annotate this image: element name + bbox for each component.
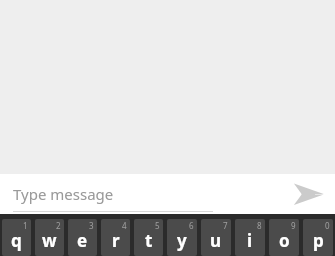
staticText: e	[77, 229, 88, 252]
staticText: w	[42, 229, 57, 252]
button[interactable]: 5	[134, 219, 163, 256]
staticText: i	[247, 229, 253, 252]
staticText: 2	[56, 220, 61, 231]
staticText: Type message	[13, 184, 114, 204]
button[interactable]: 9	[269, 219, 299, 256]
button[interactable]: 3	[68, 219, 97, 256]
staticText: 9	[291, 220, 296, 231]
staticText: 4	[122, 220, 127, 231]
button[interactable]: 2	[35, 219, 64, 256]
staticText: p	[313, 229, 324, 252]
staticText: q	[11, 229, 22, 252]
staticText: o	[279, 229, 290, 252]
button[interactable]: Send	[280, 174, 335, 214]
button[interactable]: 0	[303, 219, 333, 256]
button[interactable]: 8	[235, 219, 265, 256]
button[interactable]: 6	[167, 219, 197, 256]
staticText: 5	[155, 220, 160, 231]
staticText: r	[112, 229, 120, 252]
staticText: 1	[23, 220, 28, 231]
button[interactable]: Type message	[13, 174, 213, 214]
staticText: 3	[89, 220, 94, 231]
staticText: 8	[257, 220, 262, 231]
button[interactable]: 7	[201, 219, 231, 256]
staticText: 6	[189, 220, 194, 231]
staticText: y	[177, 229, 187, 252]
staticText: 7	[223, 220, 228, 231]
staticText: 0	[325, 220, 330, 231]
button[interactable]: 4	[101, 219, 130, 256]
staticText: u	[210, 229, 222, 252]
button[interactable]: 1	[2, 219, 31, 256]
staticText: t	[145, 229, 153, 252]
